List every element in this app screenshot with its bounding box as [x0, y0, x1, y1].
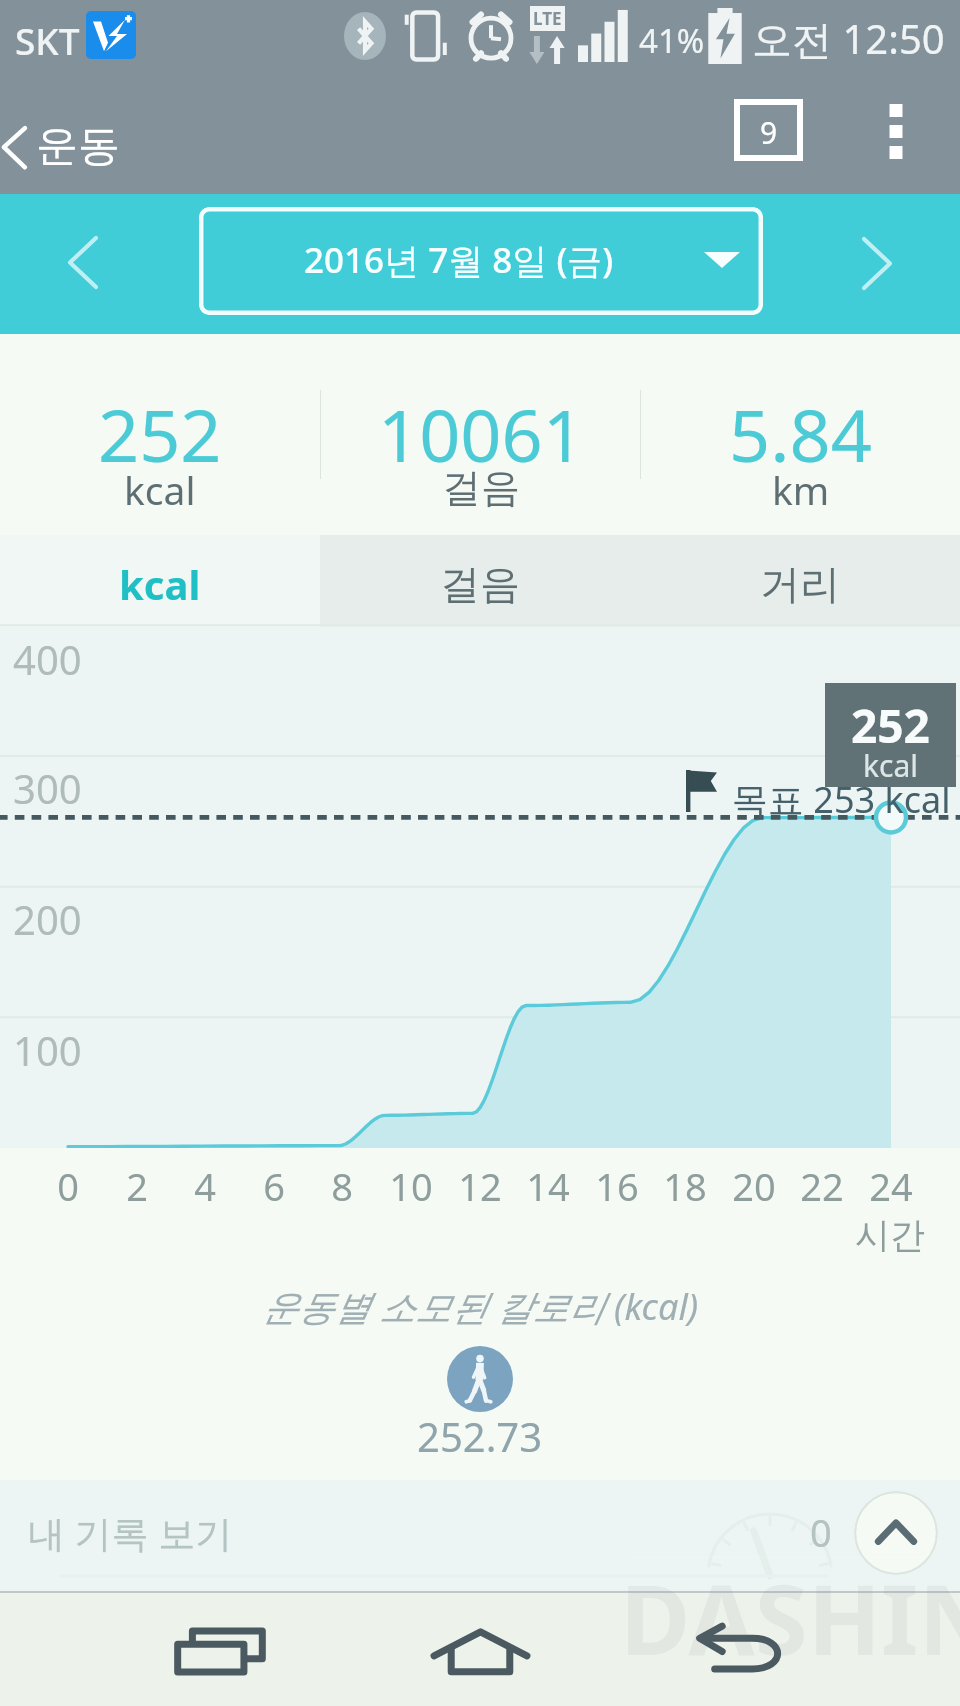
staticText: 14 [508, 1160, 588, 1212]
button[interactable]: Home [380, 1593, 580, 1706]
button[interactable]: kcal [0, 535, 320, 627]
staticText: 22 [782, 1160, 862, 1212]
staticText: 0 [810, 1506, 832, 1558]
button[interactable]: Open tabs, 9 [737, 102, 800, 158]
button[interactable]: 거리 [640, 535, 960, 627]
button[interactable]: 걸음 [320, 535, 640, 627]
staticText: 252 [98, 385, 222, 483]
staticText: kcal [119, 557, 201, 611]
staticText: 252.73 [417, 1409, 543, 1463]
staticText: 5.84 [729, 385, 872, 483]
staticText: 20 [714, 1160, 794, 1212]
staticText: 10061 [378, 385, 584, 483]
staticText: 400 [13, 632, 82, 686]
button[interactable]: Expand record [854, 1491, 938, 1575]
button[interactable]: Previous day [45, 222, 121, 302]
staticText: 시간 [855, 1213, 925, 1257]
staticText: 41% [639, 18, 705, 63]
button[interactable]: Next day [839, 223, 915, 303]
staticText: 252 [851, 694, 930, 757]
staticText: 내 기록 보기 [28, 1507, 233, 1558]
staticText: 거리 [760, 559, 840, 609]
staticText: 200 [13, 892, 82, 946]
staticText: 16 [577, 1160, 657, 1212]
button[interactable]: Recent apps [120, 1593, 320, 1706]
staticText: 운동 [36, 120, 120, 173]
staticText: 2016년 7월 8일 (금) [304, 236, 614, 284]
staticText: 2 [97, 1160, 177, 1212]
staticText: 6 [234, 1160, 314, 1212]
button[interactable]: 5.84 [641, 334, 960, 535]
button[interactable]: 2016년 7월 8일 (금) [199, 207, 763, 315]
staticText: 걸음 [440, 559, 520, 609]
staticText: km [772, 463, 830, 516]
staticText: DASHIN [620, 1552, 960, 1683]
staticText: SKT [15, 15, 80, 65]
button[interactable]: More options [875, 102, 917, 160]
staticText: 18 [645, 1160, 725, 1212]
staticText: LTE [533, 7, 562, 30]
staticText: kcal [124, 463, 196, 516]
staticText: 걸음 [442, 463, 520, 512]
button[interactable]: 10061 [321, 334, 640, 535]
staticText: 0 [28, 1160, 108, 1212]
button[interactable]: 252 [0, 334, 320, 535]
staticText: 8 [302, 1160, 382, 1212]
staticText: 9 [760, 112, 778, 153]
button[interactable]: Back [641, 1593, 841, 1706]
staticText: 10 [371, 1160, 451, 1212]
button[interactable]: Walking [447, 1346, 513, 1412]
staticText: 오전 12:50 [752, 11, 945, 66]
button[interactable]: 운동 [0, 97, 150, 194]
staticText: 24 [851, 1160, 931, 1212]
staticText: 목표 253 kcal [732, 775, 951, 824]
staticText: 100 [13, 1023, 82, 1077]
staticText: 운동별 소모된 칼로리 (kcal) [262, 1282, 699, 1331]
staticText: 12 [440, 1160, 520, 1212]
staticText: 4 [165, 1160, 245, 1212]
staticText: kcal [863, 745, 918, 786]
staticText: 300 [13, 761, 82, 815]
